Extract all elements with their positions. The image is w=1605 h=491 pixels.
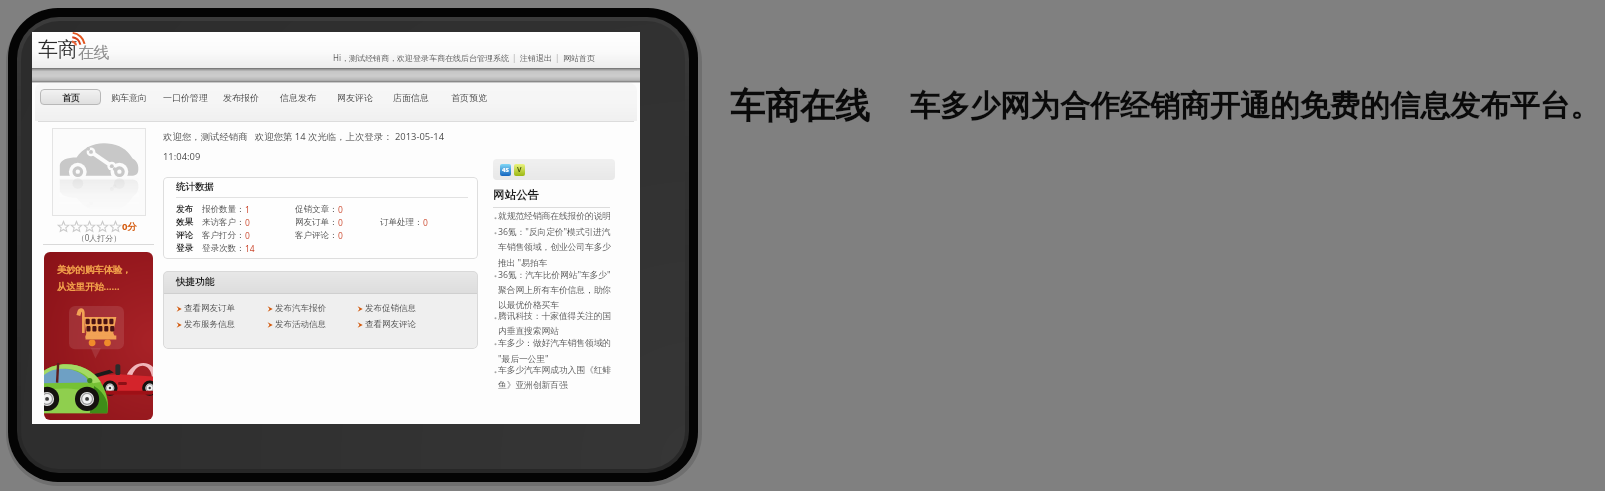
- button[interactable]: 美妙的购车体验 banner: [44, 252, 153, 420]
- staticText: 网站首页: [563, 53, 595, 63]
- staticText: 欢迎您，测试经销商 欢迎您第 14 次光临，上次登录： 2013-05-14: [163, 130, 445, 143]
- staticText: 查看网友订单: [184, 303, 235, 314]
- button[interactable]: 购车意向: [103, 89, 154, 105]
- staticText: 36氪："反向定价"模式引进汽车销售领域，创业公司车多少推出 "易拍车: [498, 226, 612, 269]
- button[interactable]: 查看网友评论: [357, 319, 447, 330]
- staticText: 网友订单：: [295, 217, 338, 228]
- staticText: 登录: [176, 243, 202, 254]
- staticText: 发布服务信息: [184, 319, 235, 330]
- staticText: 发布汽车报价: [275, 303, 326, 314]
- button[interactable]: 车商在线 logo: [36, 34, 116, 66]
- button[interactable]: 36氪："反向定价"模式引进汽车销售领域，创业公司车多少推出 "易拍车: [493, 226, 612, 269]
- button[interactable]: 发布促销信息: [357, 303, 447, 314]
- staticText: 客户打分：: [202, 230, 245, 241]
- staticText: 车多少汽车网成功入围《红鲱鱼》亚洲创新百强: [498, 365, 612, 391]
- staticText: 效果: [176, 217, 202, 228]
- staticText: 发布活动信息: [275, 319, 326, 330]
- button[interactable]: Dealer photo placeholder: [52, 128, 146, 216]
- staticText: |: [555, 52, 560, 63]
- staticText: 网站公告: [493, 188, 539, 202]
- staticText: 首页: [62, 92, 80, 103]
- staticText: 订单处理：: [380, 217, 423, 228]
- staticText: 11:04:09: [163, 150, 201, 163]
- staticText: 就规范经销商在线报价的说明: [498, 211, 612, 222]
- button[interactable]: 36氪：汽车比价网站"车多少" 聚合网上所有车价信息，助你以最优价格买车: [493, 269, 612, 311]
- staticText: 快捷功能: [176, 276, 214, 288]
- staticText: |: [512, 52, 517, 63]
- staticText: 14: [245, 243, 255, 255]
- staticText: 腾讯科技：十家值得关注的国内垂直搜索网站: [498, 311, 612, 337]
- staticText: 评论: [176, 230, 202, 241]
- staticText: 首页预览: [451, 92, 487, 103]
- staticText: 网友评论: [337, 92, 373, 103]
- button[interactable]: 网站首页: [563, 53, 595, 63]
- staticText: 注销退出: [520, 53, 552, 63]
- button[interactable]: 发布报价: [216, 89, 266, 105]
- staticText: 车多少网为合作经销商开通的免费的信息发布平台。: [910, 87, 1600, 125]
- staticText: 购车意向: [111, 92, 147, 103]
- staticText: 店面信息: [393, 92, 429, 103]
- staticText: 0分: [122, 220, 137, 233]
- staticText: 车商在线: [730, 84, 870, 128]
- staticText: 促销文章：: [295, 204, 338, 215]
- staticText: 发布报价: [223, 92, 259, 103]
- staticText: Hi，测试经销商，欢迎登录车商在线后台管理系统: [333, 52, 509, 63]
- staticText: 0: [338, 217, 343, 229]
- staticText: 统计数据: [176, 181, 214, 193]
- staticText: 0: [338, 230, 343, 242]
- staticText: 查看网友评论: [365, 319, 416, 330]
- button[interactable]: 车多少：做好汽车销售领域的 "最后一公里": [493, 337, 612, 365]
- staticText: 发布: [176, 204, 202, 215]
- staticText: 美妙的购车体验，: [57, 264, 132, 276]
- staticText: 0: [245, 230, 250, 242]
- button[interactable]: 发布活动信息: [267, 319, 357, 330]
- staticText: 登录次数：: [202, 243, 245, 254]
- staticText: 0: [245, 217, 250, 229]
- staticText: 从这里开始……: [57, 280, 120, 293]
- staticText: 1: [245, 204, 250, 216]
- button[interactable]: 腾讯科技：十家值得关注的国内垂直搜索网站: [493, 311, 612, 337]
- staticText: 信息发布: [280, 92, 316, 103]
- staticText: 来访客户：: [202, 217, 245, 228]
- staticText: 发布促销信息: [365, 303, 416, 314]
- staticText: 在线: [78, 43, 109, 63]
- button[interactable]: 注销退出: [520, 53, 552, 63]
- button[interactable]: 4S store badge: [500, 164, 511, 176]
- button[interactable]: 一口价管理: [157, 89, 214, 105]
- button[interactable]: 车多少汽车网成功入围《红鲱鱼》亚洲创新百强: [493, 365, 612, 391]
- staticText: （0人打分）: [52, 232, 146, 243]
- button[interactable]: 查看网友订单: [176, 303, 267, 314]
- button[interactable]: Verified badge: [514, 164, 525, 176]
- staticText: 4S: [502, 166, 509, 174]
- staticText: 一口价管理: [163, 92, 208, 103]
- button[interactable]: 就规范经销商在线报价的说明: [493, 211, 612, 226]
- button[interactable]: 发布汽车报价: [267, 303, 357, 314]
- staticText: 客户评论：: [295, 230, 338, 241]
- staticText: V: [517, 165, 522, 175]
- button[interactable]: 店面信息: [384, 89, 437, 105]
- staticText: 36氪：汽车比价网站"车多少" 聚合网上所有车价信息，助你以最优价格买车: [498, 269, 612, 311]
- staticText: 车商: [38, 37, 77, 62]
- staticText: 报价数量：: [202, 204, 245, 215]
- button[interactable]: 网友评论: [329, 89, 380, 105]
- staticText: 0: [338, 204, 343, 216]
- staticText: 车多少：做好汽车销售领域的 "最后一公里": [498, 337, 612, 365]
- staticText: 0: [423, 217, 428, 229]
- button[interactable]: 首页预览: [443, 89, 495, 105]
- button[interactable]: 信息发布: [273, 89, 323, 105]
- button[interactable]: 首页: [40, 89, 101, 105]
- button[interactable]: 发布服务信息: [176, 319, 267, 330]
